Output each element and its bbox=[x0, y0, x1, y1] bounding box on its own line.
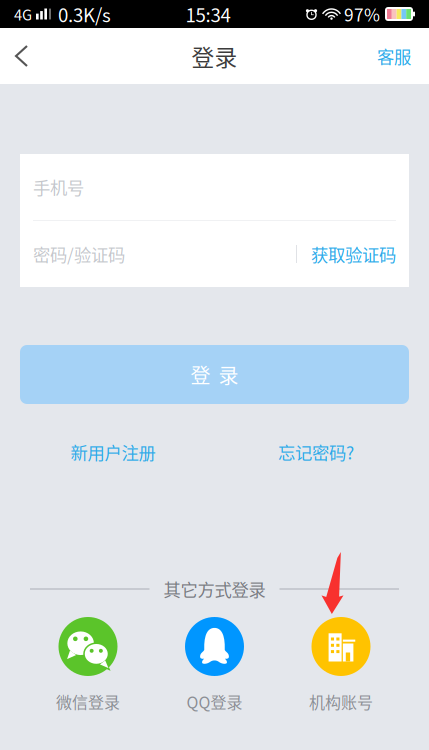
staticText: QQ登录 bbox=[186, 690, 242, 713]
staticText: 微信登录 bbox=[56, 690, 120, 713]
staticText: 获取验证码 bbox=[311, 241, 396, 267]
staticText: 15:34 bbox=[185, 0, 230, 27]
button[interactable]: 忘记密码? bbox=[251, 432, 381, 472]
staticText: 新用户注册 bbox=[70, 439, 155, 465]
staticText: 4G bbox=[14, 3, 32, 25]
button[interactable]: 登 录 bbox=[20, 345, 409, 404]
button[interactable]: Back bbox=[0, 30, 43, 82]
button[interactable]: 新用户注册 bbox=[48, 432, 178, 472]
button[interactable]: 微信登录 bbox=[40, 617, 136, 713]
staticText: 客服 bbox=[377, 43, 411, 69]
button[interactable]: 获取验证码 bbox=[297, 241, 396, 267]
staticText: 忘记密码? bbox=[278, 439, 354, 465]
staticText: 登录 bbox=[191, 40, 237, 72]
button[interactable]: QQ登录 bbox=[166, 617, 262, 713]
staticText: 登 录 bbox=[190, 360, 238, 389]
staticText: 密码/验证码 bbox=[33, 241, 125, 267]
staticText: 0.3K/s bbox=[58, 0, 111, 27]
staticText: 97% bbox=[344, 1, 380, 27]
staticText: 其它方式登录 bbox=[163, 576, 265, 602]
button[interactable]: 客服 bbox=[359, 27, 429, 85]
button[interactable]: 机构账号 bbox=[293, 617, 389, 713]
staticText: 机构账号 bbox=[309, 690, 373, 713]
staticText: 手机号 bbox=[33, 174, 84, 200]
